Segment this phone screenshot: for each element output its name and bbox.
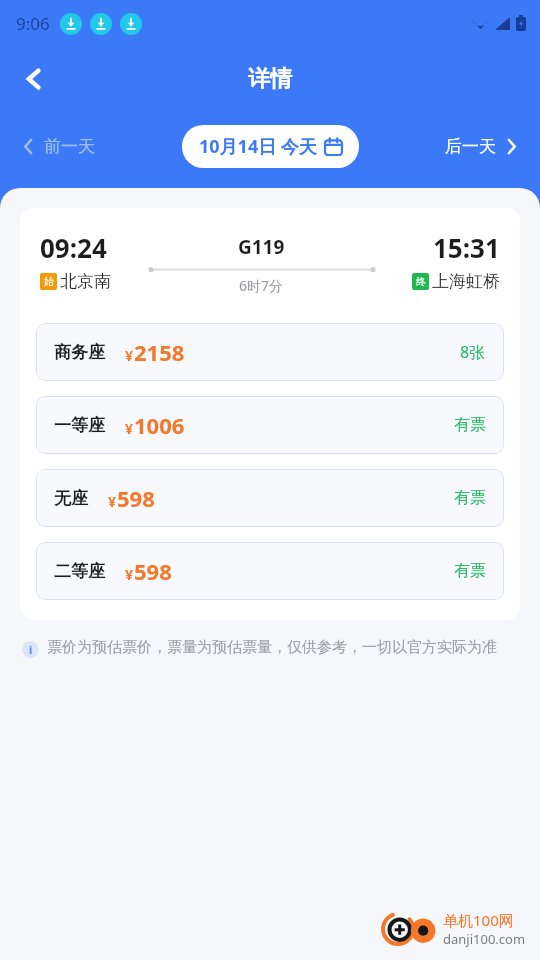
staticText: 2158 bbox=[134, 337, 185, 367]
staticText: 商务座 bbox=[54, 342, 105, 363]
staticText: 10月14日 今天 bbox=[199, 134, 317, 159]
staticText: 9:06 bbox=[16, 12, 50, 35]
staticText: 北京南 bbox=[60, 271, 111, 292]
staticText: danji100.com bbox=[443, 930, 526, 948]
staticText: 6时7分 bbox=[239, 276, 284, 295]
button[interactable]: 前一天 bbox=[18, 130, 99, 163]
staticText: 始 bbox=[44, 275, 54, 288]
staticText: ¥ bbox=[125, 565, 134, 584]
staticText: 上海虹桥 bbox=[432, 271, 500, 292]
staticText: ¥ bbox=[125, 346, 134, 365]
staticText: 15:31 bbox=[433, 230, 500, 265]
staticText: 二等座 bbox=[54, 561, 105, 582]
staticText: 终 bbox=[416, 275, 426, 288]
staticText: 有票 bbox=[454, 415, 486, 435]
staticText: i bbox=[29, 642, 33, 657]
staticText: 票价为预估票价，票量为预估票量，仅供参考，一切以官方实际为准 bbox=[47, 638, 512, 657]
button[interactable]: 二等座 bbox=[36, 542, 504, 600]
staticText: 单机100网 bbox=[443, 910, 514, 930]
staticText: 09:24 bbox=[40, 230, 107, 265]
staticText: 后一天 bbox=[445, 136, 496, 157]
button[interactable]: Back bbox=[10, 55, 58, 103]
staticText: ¥ bbox=[125, 419, 134, 438]
staticText: 有票 bbox=[454, 488, 486, 508]
staticText: 有票 bbox=[454, 561, 486, 581]
staticText: 前一天 bbox=[44, 136, 95, 157]
staticText: 8张 bbox=[460, 341, 486, 363]
button[interactable]: 后一天 bbox=[441, 130, 522, 163]
staticText: G119 bbox=[238, 234, 285, 260]
button[interactable]: 一等座 bbox=[36, 396, 504, 454]
staticText: ¥ bbox=[108, 492, 117, 511]
staticText: 一等座 bbox=[54, 415, 105, 436]
staticText: 无座 bbox=[54, 488, 88, 509]
button[interactable]: 10月14日 今天 bbox=[182, 125, 359, 168]
button[interactable]: 商务座 bbox=[36, 323, 504, 381]
staticText: 1006 bbox=[134, 410, 185, 440]
staticText: 598 bbox=[117, 483, 155, 513]
staticText: 598 bbox=[134, 556, 172, 586]
staticText: 详情 bbox=[248, 65, 292, 93]
button[interactable]: 无座 bbox=[36, 469, 504, 527]
